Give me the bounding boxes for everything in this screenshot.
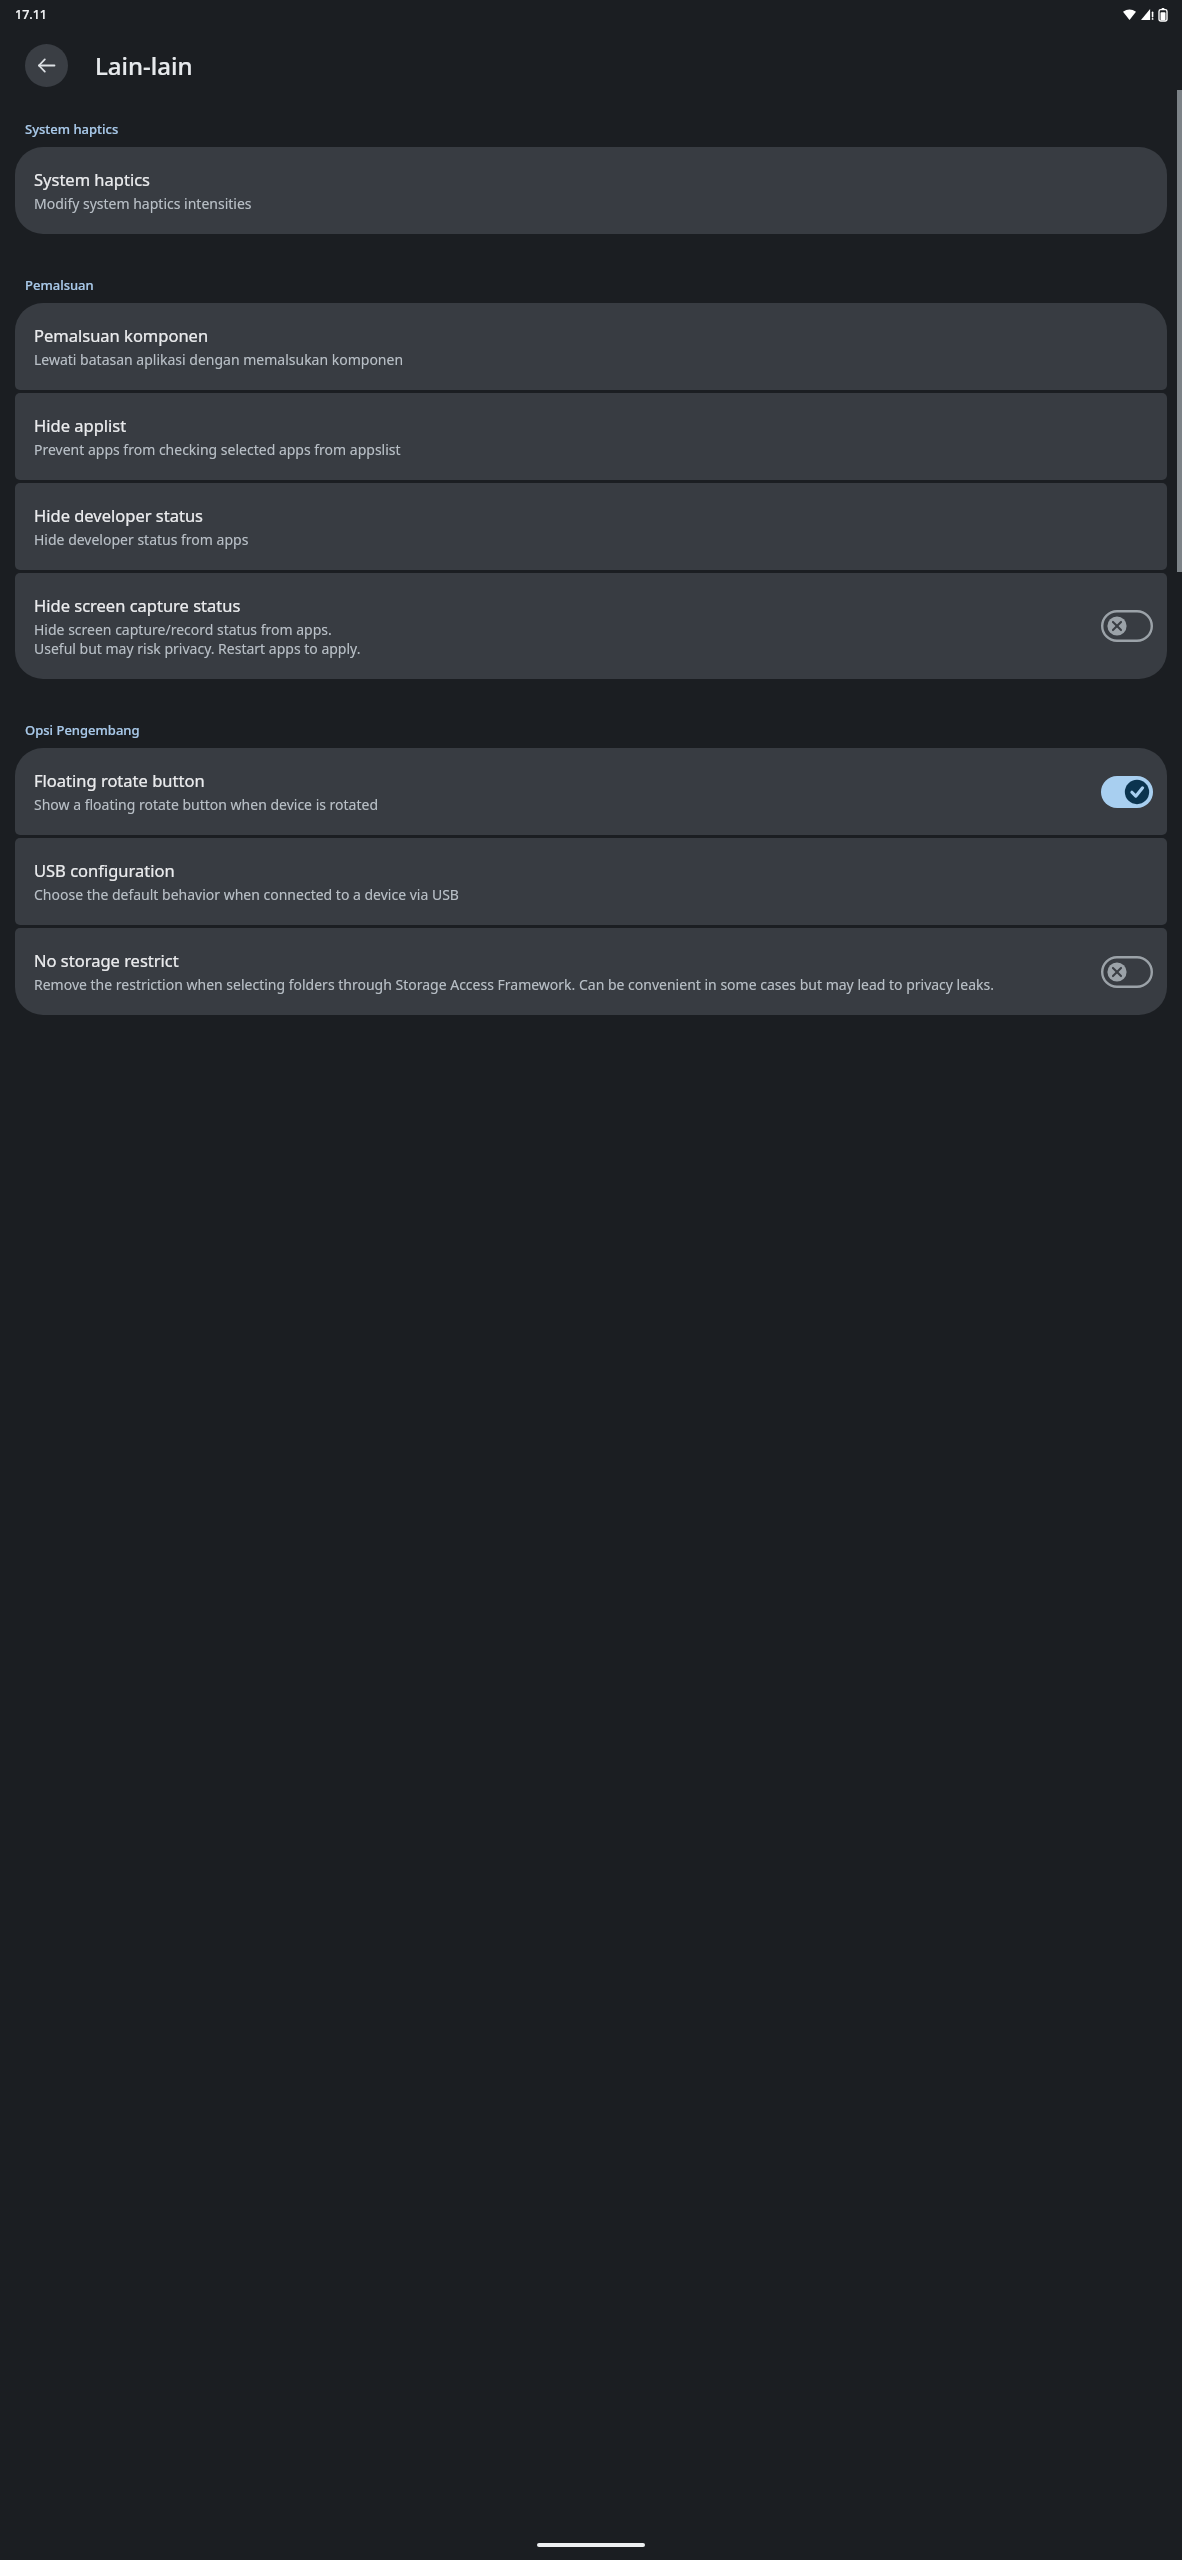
- staticText: Hide developer status from apps: [34, 530, 249, 549]
- button[interactable]: USB configuration: [15, 838, 1167, 925]
- staticText: Pemalsuan: [25, 276, 94, 294]
- staticText: Hide applist: [34, 414, 127, 436]
- staticText: System haptics: [34, 168, 150, 190]
- button[interactable]: Pemalsuan komponen: [15, 303, 1167, 390]
- staticText: Floating rotate button: [34, 769, 205, 791]
- button[interactable]: Back: [25, 44, 68, 87]
- staticText: Lain-lain: [95, 49, 193, 82]
- staticText: Prevent apps from checking selected apps…: [34, 440, 401, 459]
- staticText: Hide developer status: [34, 504, 204, 526]
- staticText: USB configuration: [34, 859, 175, 881]
- staticText: Hide screen capture status: [34, 594, 241, 616]
- button[interactable]: Hide developer status: [15, 483, 1167, 570]
- button[interactable]: No storage restrict: [15, 928, 1167, 1015]
- staticText: Remove the restriction when selecting fo…: [34, 975, 994, 994]
- button[interactable]: Toggle on: [1101, 776, 1153, 808]
- staticText: Modify system haptics intensities: [34, 194, 252, 213]
- staticText: Opsi Pengembang: [25, 721, 140, 739]
- staticText: 17.11: [15, 6, 48, 23]
- staticText: Show a floating rotate button when devic…: [34, 795, 379, 814]
- button[interactable]: Hide applist: [15, 393, 1167, 480]
- staticText: No storage restrict: [34, 949, 179, 971]
- button[interactable]: System haptics: [15, 147, 1167, 234]
- staticText: Pemalsuan komponen: [34, 324, 209, 346]
- staticText: System haptics: [25, 120, 119, 138]
- staticText: Lewati batasan aplikasi dengan memalsuka…: [34, 350, 404, 369]
- button[interactable]: Toggle off: [1101, 956, 1153, 988]
- button[interactable]: Floating rotate button: [15, 748, 1167, 835]
- button[interactable]: Hide screen capture status: [15, 573, 1167, 679]
- staticText: Choose the default behavior when connect…: [34, 885, 459, 904]
- staticText: Hide screen capture/record status from a…: [34, 620, 361, 658]
- button[interactable]: Toggle off: [1101, 610, 1153, 642]
